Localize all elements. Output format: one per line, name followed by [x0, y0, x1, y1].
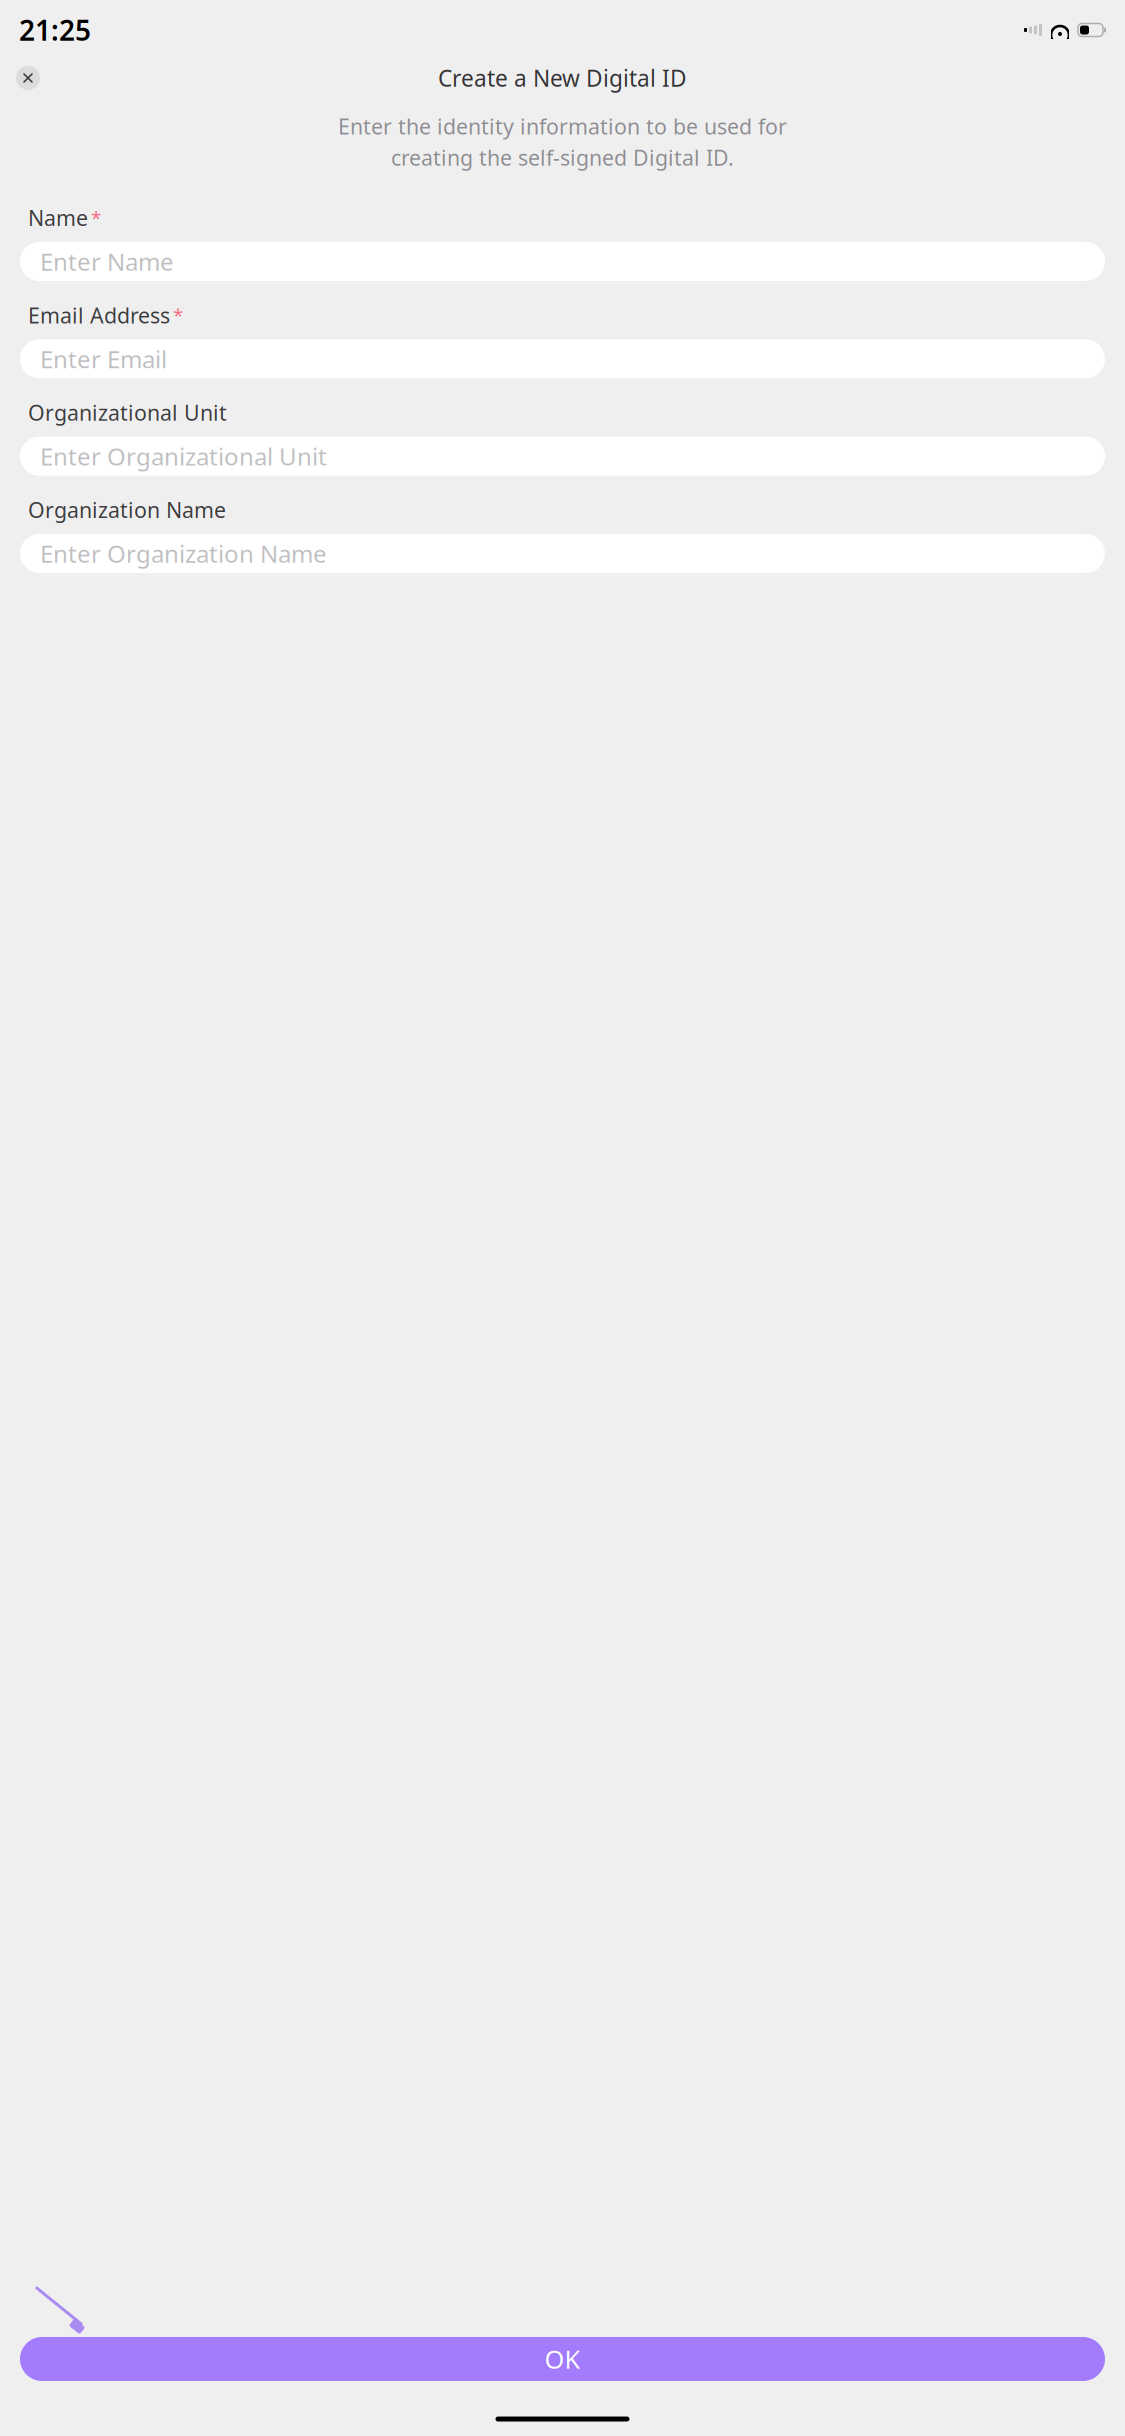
staticText: OK [544, 2342, 580, 2376]
button[interactable]: Enter Organizational Unit [20, 437, 1105, 476]
staticText: * [91, 205, 101, 230]
staticText: Create a New Digital ID [438, 63, 687, 93]
button[interactable]: OK [20, 2337, 1105, 2381]
button[interactable]: Enter Organization Name [20, 534, 1105, 573]
button[interactable]: Enter Email [20, 339, 1105, 378]
staticText: Name [28, 204, 88, 232]
staticText: Email Address [28, 301, 170, 329]
button[interactable]: Enter Name [20, 242, 1105, 281]
staticText: Organizational Unit [28, 398, 227, 427]
button[interactable]: Close [6, 56, 50, 100]
staticText: Organization Name [28, 496, 226, 524]
staticText: Enter Organization Name [40, 537, 327, 569]
staticText: Enter the identity information to be use… [338, 112, 787, 140]
staticText: Enter Organizational Unit [40, 440, 327, 472]
staticText: Enter Name [40, 246, 174, 277]
staticText: 21:25 [19, 11, 91, 49]
staticText: creating the self-signed Digital ID. [391, 143, 734, 172]
staticText: * [173, 303, 183, 328]
staticText: Enter Email [40, 343, 167, 375]
